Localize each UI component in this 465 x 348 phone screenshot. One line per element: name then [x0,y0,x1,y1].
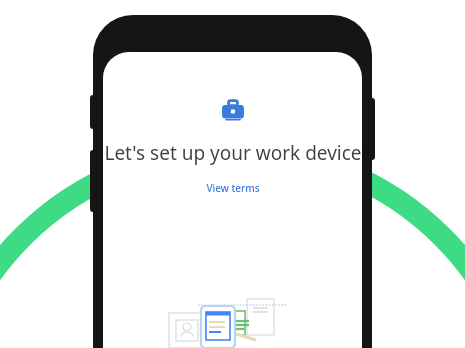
button[interactable]: View terms [200,178,266,198]
staticText: Let's set up your work device [104,140,362,166]
staticText: View terms [206,181,260,195]
other: Work profile [220,98,246,124]
